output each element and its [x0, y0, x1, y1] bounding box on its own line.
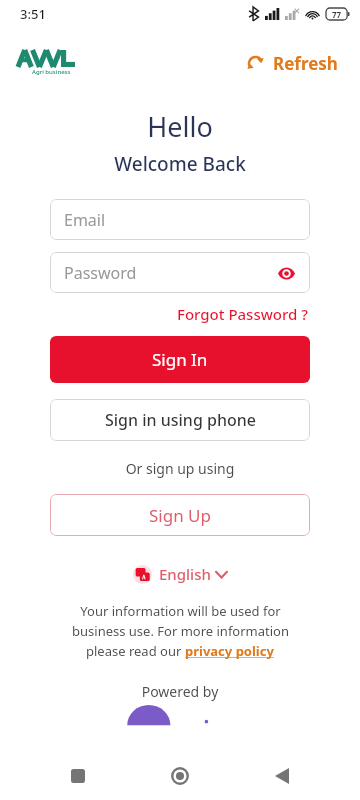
- staticText: Agri business: [32, 68, 71, 76]
- staticText: Sign Up: [149, 504, 211, 527]
- staticText: Your information will be used for: [80, 602, 281, 620]
- staticText: Sign in using phone: [105, 409, 256, 431]
- staticText: 77: [332, 9, 342, 20]
- staticText: Powered by: [0, 682, 360, 701]
- button[interactable]: Forgot Password ?: [175, 302, 310, 326]
- staticText: please read our: [86, 642, 185, 660]
- button[interactable]: English: [129, 561, 231, 587]
- staticText: Password: [64, 262, 137, 284]
- staticText: Or sign up using: [0, 459, 360, 478]
- staticText: Forgot Password ?: [177, 304, 308, 324]
- button[interactable]: Sign In: [50, 336, 310, 383]
- button[interactable]: Sign Up: [50, 494, 310, 536]
- button[interactable]: Back: [258, 752, 306, 800]
- button[interactable]: Recent apps: [54, 752, 102, 800]
- staticText: business use. For more information: [72, 622, 289, 640]
- staticText: English: [159, 564, 211, 584]
- button[interactable]: privacy policy: [185, 642, 274, 660]
- staticText: Email: [64, 209, 106, 231]
- staticText: Hello: [0, 108, 360, 145]
- button[interactable]: Home: [156, 752, 204, 800]
- staticText: 3:51: [20, 5, 46, 23]
- staticText: privacy policy: [185, 642, 274, 660]
- button[interactable]: Password: [50, 252, 310, 293]
- staticText: Welcome Back: [0, 151, 360, 177]
- button[interactable]: Show password: [270, 257, 302, 289]
- staticText: Refresh: [273, 52, 338, 75]
- button[interactable]: Sign in using phone: [50, 399, 310, 441]
- button[interactable]: Refresh: [242, 48, 342, 79]
- button[interactable]: Email: [50, 199, 310, 240]
- staticText: Sign In: [152, 348, 208, 371]
